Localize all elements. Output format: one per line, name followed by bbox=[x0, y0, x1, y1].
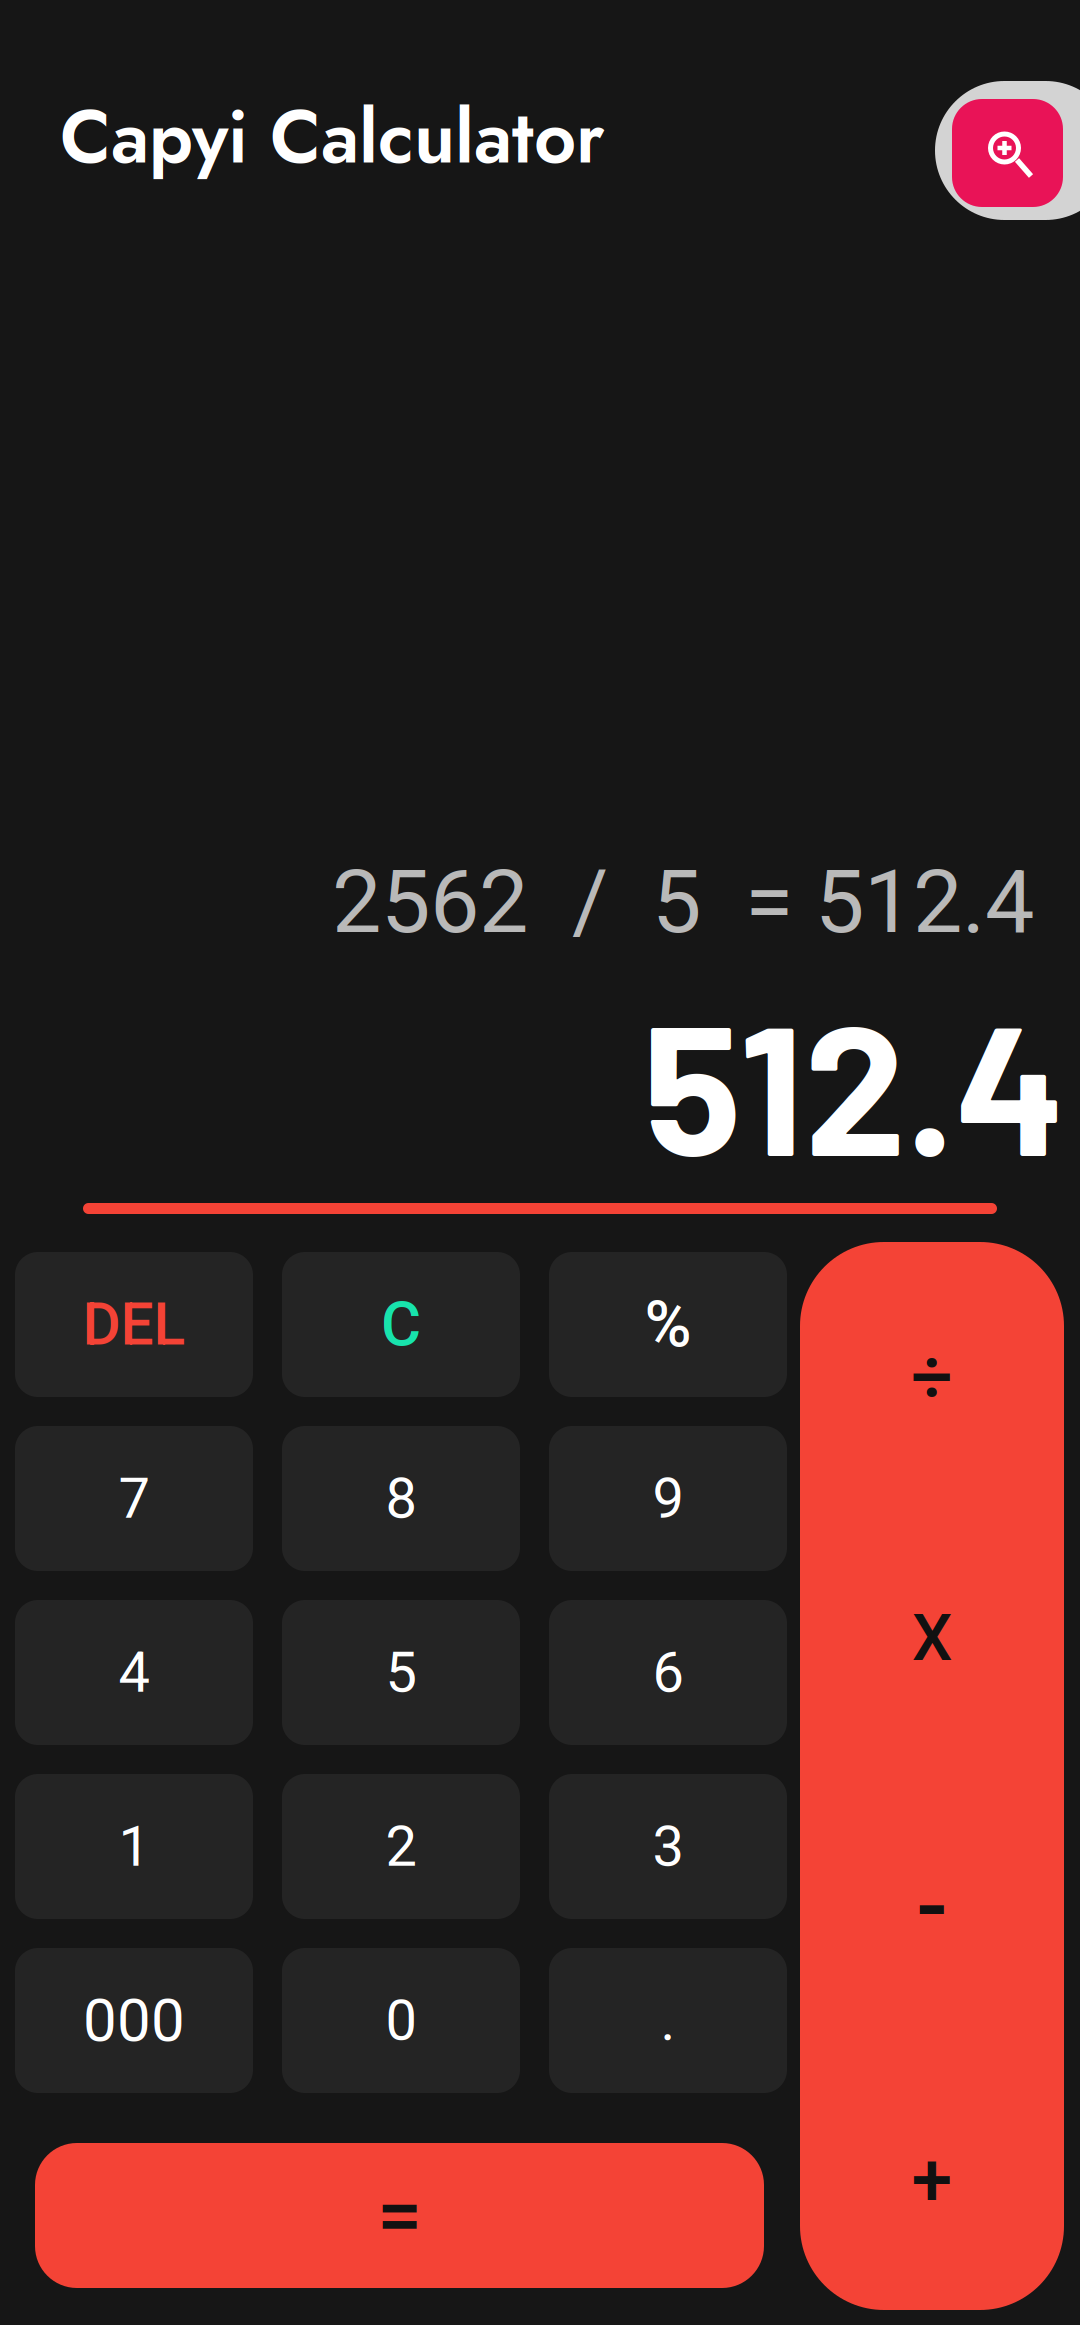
button[interactable]: 7 bbox=[15, 1426, 253, 1571]
staticText: 9 bbox=[652, 1466, 683, 1531]
staticText: - bbox=[916, 1851, 948, 1961]
staticText: DEL bbox=[82, 1290, 185, 1359]
staticText: % bbox=[644, 1287, 691, 1362]
staticText: 4 bbox=[118, 1640, 149, 1705]
staticText: 7 bbox=[118, 1466, 149, 1531]
staticText: = bbox=[377, 2169, 422, 2262]
staticText: 1 bbox=[118, 1814, 149, 1879]
button[interactable]: 4 bbox=[15, 1600, 253, 1745]
button[interactable]: % bbox=[549, 1252, 787, 1397]
staticText: X bbox=[912, 1600, 952, 1675]
staticText: 0 bbox=[385, 1988, 416, 2053]
button[interactable]: 2 bbox=[282, 1774, 520, 1919]
button[interactable]: 3 bbox=[549, 1774, 787, 1919]
staticText: + bbox=[911, 2137, 952, 2223]
staticText: ÷ bbox=[911, 1334, 953, 1420]
staticText: . bbox=[660, 1988, 675, 2053]
button[interactable]: . bbox=[549, 1948, 787, 2093]
button[interactable]: Add bbox=[800, 2046, 1064, 2313]
button[interactable]: DEL bbox=[15, 1252, 253, 1397]
staticText: 512.4 bbox=[643, 973, 1066, 1193]
button[interactable]: Zoom in bbox=[935, 81, 1080, 220]
button[interactable]: Subtract bbox=[800, 1772, 1064, 2039]
button[interactable]: 8 bbox=[282, 1426, 520, 1571]
staticText: 2562 / 5 = 512.4 bbox=[332, 850, 1034, 953]
staticText: 000 bbox=[83, 1985, 185, 2056]
staticText: 8 bbox=[385, 1466, 416, 1531]
button[interactable]: = bbox=[35, 2143, 764, 2288]
button[interactable]: Divide bbox=[800, 1243, 1064, 1510]
staticText: Capyi Calculator bbox=[60, 84, 605, 190]
button[interactable]: 6 bbox=[549, 1600, 787, 1745]
button[interactable]: 5 bbox=[282, 1600, 520, 1745]
staticText: 6 bbox=[652, 1640, 683, 1705]
staticText: 5 bbox=[385, 1640, 416, 1705]
button[interactable]: 1 bbox=[15, 1774, 253, 1919]
button[interactable]: 000 bbox=[15, 1948, 253, 2093]
button[interactable]: 0 bbox=[282, 1948, 520, 2093]
staticText: 3 bbox=[652, 1814, 683, 1879]
button[interactable]: C bbox=[282, 1252, 520, 1397]
staticText: C bbox=[381, 1289, 421, 1360]
button[interactable]: 9 bbox=[549, 1426, 787, 1571]
staticText: 2 bbox=[385, 1814, 416, 1879]
button[interactable]: Multiply bbox=[800, 1504, 1064, 1771]
